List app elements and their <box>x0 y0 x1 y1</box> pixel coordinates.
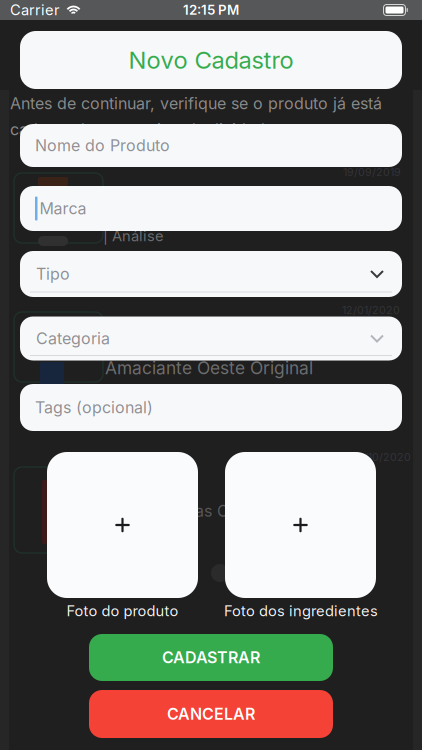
staticText: 19/09/2019 <box>343 166 401 178</box>
button[interactable]: Tipo <box>20 251 402 297</box>
button[interactable]: Nome do Produto <box>20 124 402 167</box>
staticText: Carrier <box>10 1 60 19</box>
button[interactable]: CADASTRAR <box>89 634 333 681</box>
staticText: CADASTRAR <box>162 648 260 667</box>
staticText: CANCELAR <box>167 705 255 723</box>
staticText: Foto dos ingredientes <box>224 602 378 620</box>
button[interactable]: Categoria <box>20 316 402 360</box>
staticText: | Análise <box>103 227 164 245</box>
button[interactable] <box>47 452 198 598</box>
staticText: cadastrado para evitar duplicidades. <box>10 120 287 139</box>
button[interactable] <box>225 452 376 598</box>
staticText: Tipo <box>36 265 70 283</box>
button[interactable]: Marca <box>20 186 402 231</box>
staticText: Amaciante Oeste Original <box>105 358 313 378</box>
staticText: Nome do Produto <box>35 136 170 155</box>
staticText: as C <box>195 502 229 520</box>
button[interactable]: Tags (opcional) <box>20 384 402 431</box>
staticText: 12/01/2020 <box>342 304 400 316</box>
staticText: Categoria <box>36 329 110 348</box>
staticText: Marca <box>39 199 86 218</box>
button[interactable]: CANCELAR <box>89 690 333 738</box>
staticText: 12:15 PM <box>183 2 239 18</box>
staticText: Antes de continuar, verifique se o produ… <box>10 94 382 113</box>
staticText: 21/10/2020 <box>353 451 411 463</box>
staticText: Tags (opcional) <box>35 398 153 417</box>
staticText: Novo Cadastro <box>128 46 293 74</box>
staticText: Foto do produto <box>66 602 178 620</box>
